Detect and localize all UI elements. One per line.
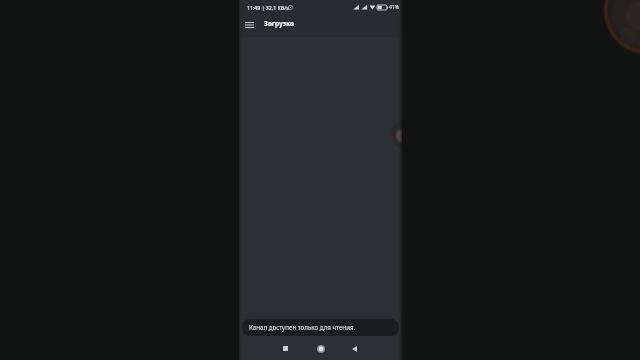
button[interactable]: Канал доступен только для чтения. (242, 319, 399, 336)
staticText: 11:49 | 32,1 KB/s (247, 4, 289, 11)
button[interactable]: Back (345, 339, 364, 358)
staticText: 41% (389, 4, 399, 11)
button[interactable]: Recent apps (276, 339, 295, 358)
staticText: Канал доступен только для чтения. (249, 323, 356, 331)
button[interactable]: Open navigation menu (241, 17, 257, 33)
button[interactable]: Home (311, 339, 330, 358)
staticText: Загрузка (264, 19, 294, 28)
